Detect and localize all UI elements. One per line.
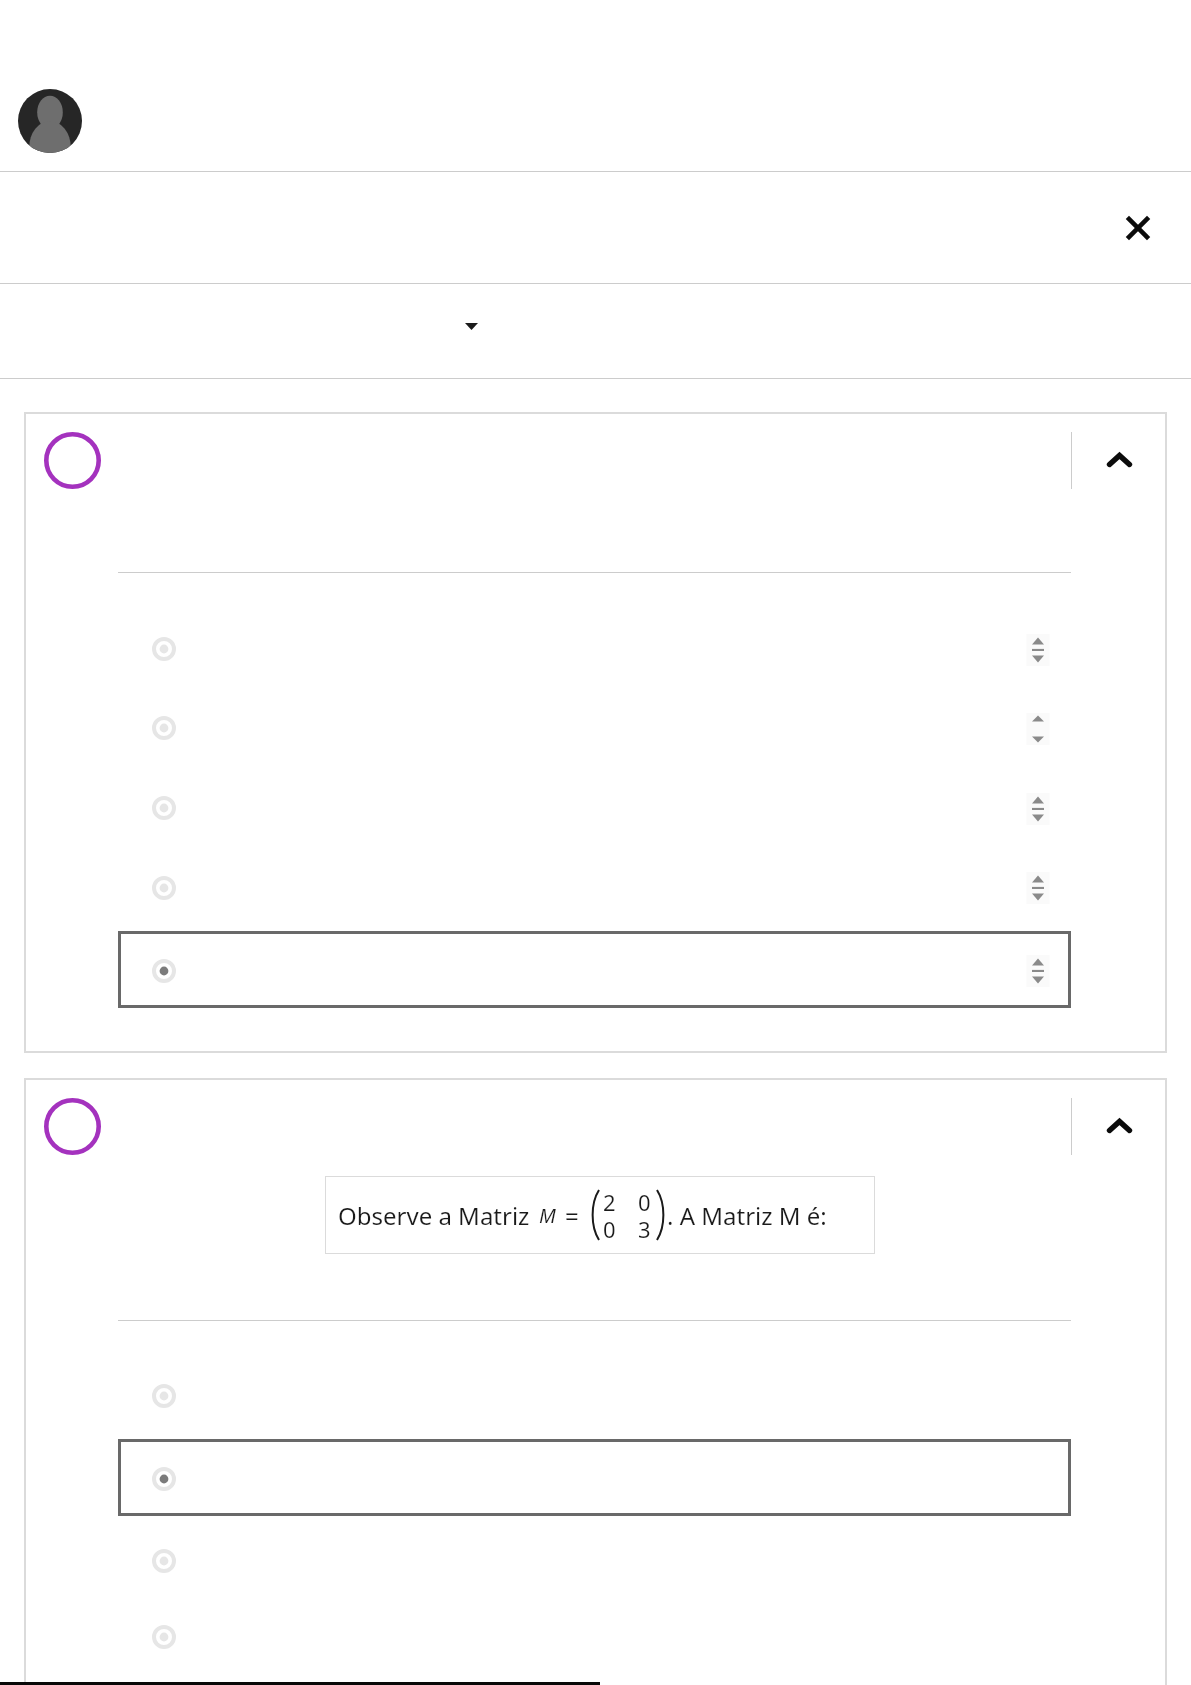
button[interactable]: Option — [142, 706, 186, 750]
button[interactable]: Selected option — [118, 931, 1071, 1008]
button[interactable]: Question status — [44, 1098, 101, 1155]
button[interactable]: Option — [142, 1374, 186, 1418]
staticText: 0 — [603, 1214, 616, 1242]
button[interactable]: Collapse — [1091, 432, 1147, 488]
staticText: Observe a Matriz — [338, 1199, 530, 1232]
button[interactable]: Question status — [44, 432, 101, 489]
staticText: . A Matriz M é: — [667, 1199, 827, 1232]
button[interactable]: Account — [18, 89, 82, 153]
button[interactable]: Option — [142, 949, 186, 993]
button[interactable]: Option — [142, 627, 186, 671]
button[interactable]: Close — [1110, 200, 1166, 256]
staticText: 3 — [638, 1214, 651, 1242]
button[interactable]: Option — [142, 1615, 186, 1659]
button[interactable]: Option — [142, 786, 186, 830]
staticText: = — [565, 1199, 579, 1232]
button[interactable]: Dropdown — [447, 306, 495, 346]
button[interactable]: Option — [142, 866, 186, 910]
staticText: 0 — [638, 1187, 651, 1217]
button[interactable]: Selected option — [118, 1439, 1071, 1516]
button[interactable]: Option — [142, 1539, 186, 1583]
staticText: M — [539, 1202, 556, 1229]
staticText: 2 — [603, 1187, 616, 1217]
button[interactable]: Option — [142, 1457, 186, 1501]
button[interactable]: Collapse — [1091, 1098, 1147, 1154]
